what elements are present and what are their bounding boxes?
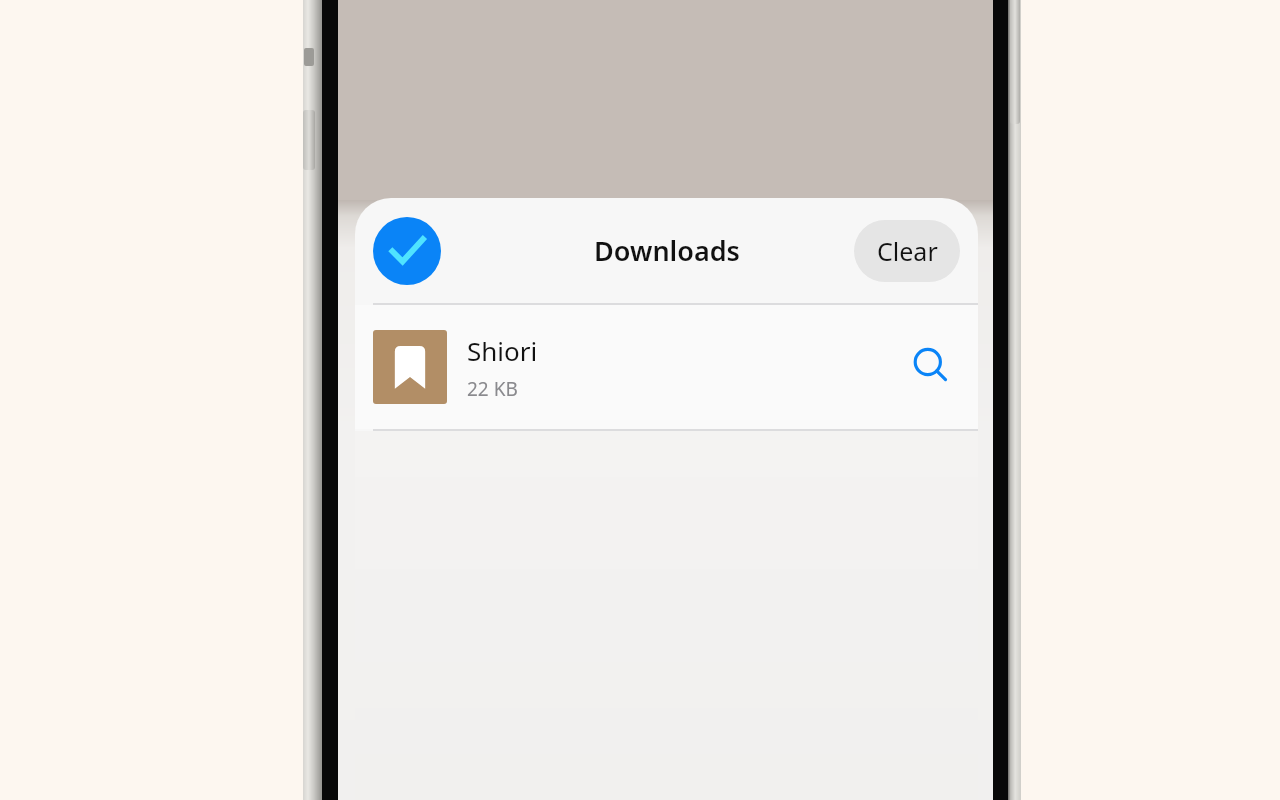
staticText: Clear [877, 234, 938, 268]
staticText: Shiori [467, 333, 538, 368]
staticText: 22 KB [467, 376, 518, 402]
button[interactable]: Clear [854, 220, 960, 282]
button[interactable]: Search [904, 339, 960, 395]
staticText: Downloads [594, 232, 740, 269]
button[interactable]: Shiori [355, 305, 978, 429]
button[interactable]: Select all [373, 217, 441, 285]
